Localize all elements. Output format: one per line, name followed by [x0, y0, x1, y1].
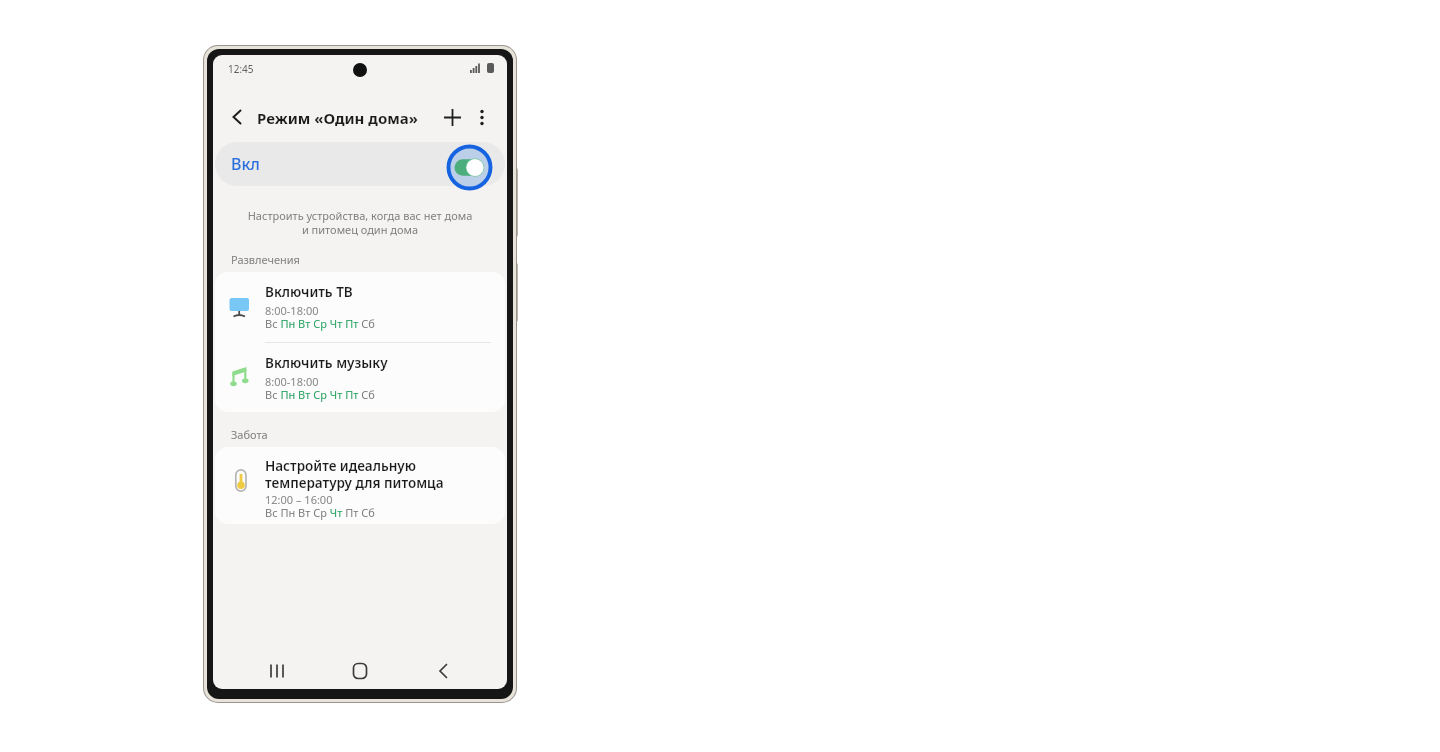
button[interactable]	[346, 657, 374, 685]
staticText: 12:45	[228, 62, 254, 76]
button[interactable]	[227, 106, 249, 128]
button[interactable]: Настройте идеальную температуру для пито…	[215, 447, 505, 524]
staticText: Настроить устройства, когда вас нет дома…	[213, 208, 507, 237]
staticText: 8:00-18:00	[265, 303, 319, 318]
staticText: Режим «Один дома»	[257, 108, 418, 128]
button[interactable]	[215, 272, 505, 342]
button[interactable]	[263, 657, 291, 685]
staticText: Включить ТВ	[265, 283, 353, 301]
staticText: Развлечения	[231, 252, 300, 267]
button[interactable]: Вкл	[215, 142, 505, 186]
staticText: Вс Пн Вт Ср Чт Пт Сб	[265, 505, 375, 520]
button[interactable]	[429, 657, 457, 685]
staticText: Настройте идеальную температуру для пито…	[265, 457, 444, 492]
staticText: 8:00-18:00	[265, 374, 319, 389]
staticText: 12:00 – 16:00	[265, 492, 333, 507]
button[interactable]	[215, 342, 505, 412]
staticText: Забота	[231, 427, 268, 442]
button[interactable]	[441, 106, 464, 129]
staticText: Вс Пн Вт Ср Чт Пт Сб	[265, 316, 375, 331]
staticText: Включить музыку	[265, 354, 388, 372]
staticText: Вкл	[231, 153, 260, 175]
staticText: Вс Пн Вт Ср Чт Пт Сб	[265, 387, 375, 402]
button[interactable]	[475, 106, 489, 129]
